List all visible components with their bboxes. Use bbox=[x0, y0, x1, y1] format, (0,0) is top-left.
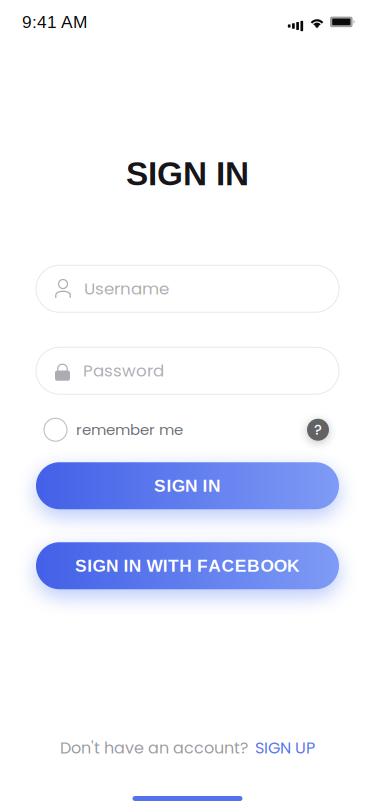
staticText: I bbox=[87, 556, 92, 575]
staticText: SIGN IN bbox=[126, 155, 249, 192]
staticText: remember me bbox=[76, 419, 183, 440]
button[interactable]: Don't have an account? bbox=[60, 737, 315, 759]
button[interactable]: remember me bbox=[44, 418, 183, 441]
staticText: O bbox=[274, 556, 287, 575]
staticText: SIGN UP bbox=[255, 737, 315, 759]
staticText: W bbox=[146, 556, 162, 575]
staticText: Username bbox=[84, 277, 169, 300]
staticText: F bbox=[197, 556, 208, 575]
staticText: C bbox=[221, 556, 234, 575]
staticText: I bbox=[203, 476, 208, 495]
staticText: N bbox=[129, 556, 142, 575]
staticText: Don't have an account? bbox=[60, 737, 248, 759]
staticText bbox=[142, 556, 147, 575]
staticText: N bbox=[185, 476, 198, 495]
staticText: N bbox=[208, 476, 221, 495]
button[interactable]: S bbox=[36, 462, 339, 509]
staticText: I bbox=[166, 476, 171, 495]
staticText: K bbox=[287, 556, 300, 575]
staticText: S bbox=[75, 556, 87, 575]
staticText: T bbox=[168, 556, 179, 575]
staticText: O bbox=[260, 556, 273, 575]
staticText: N bbox=[106, 556, 119, 575]
staticText: A bbox=[208, 556, 221, 575]
staticText: H bbox=[179, 556, 192, 575]
staticText: G bbox=[172, 476, 185, 495]
staticText: B bbox=[247, 556, 260, 575]
staticText: E bbox=[235, 556, 247, 575]
staticText: I bbox=[163, 556, 168, 575]
staticText: Password bbox=[83, 359, 164, 382]
staticText: 9:41 AM bbox=[22, 12, 87, 32]
staticText: S bbox=[154, 476, 166, 495]
staticText: G bbox=[93, 556, 106, 575]
staticText: ? bbox=[314, 419, 322, 440]
button[interactable]: Help bbox=[307, 419, 329, 441]
button[interactable]: S bbox=[36, 542, 339, 589]
staticText: I bbox=[123, 556, 128, 575]
